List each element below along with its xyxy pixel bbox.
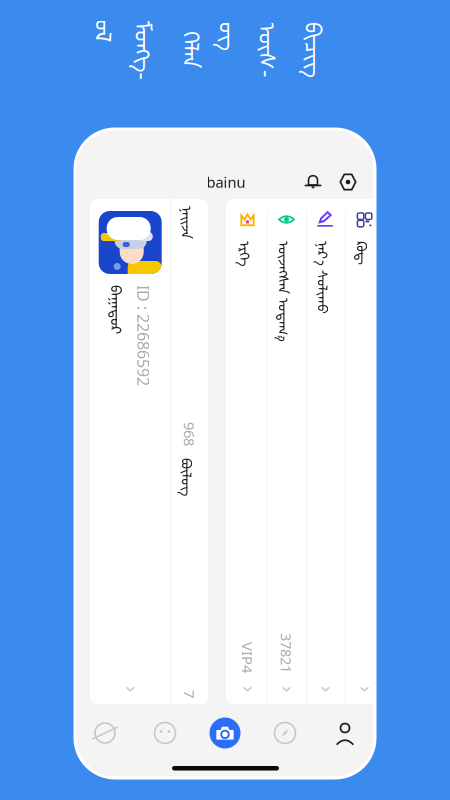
button[interactable]: ᠦᠵᠡᠭᠰᠡᠨ ᠤᠳᠠᠭ᠎ᠠ [0,382,450,421]
button[interactable]: ᠺᠣᠳ᠋ [0,304,450,343]
button[interactable]: Explore [255,707,315,759]
staticText: 968 [207,489,231,509]
staticText: ᠬᠡᠯᠡᠨ [177,30,215,70]
button[interactable]: ID : 22686592 [0,518,450,598]
staticText: ᠦᠰᠦᠭ [225,10,279,90]
button[interactable]: Discover [75,707,135,759]
button[interactable]: Settings [331,165,365,199]
button[interactable]: Camera [195,707,255,759]
staticText: ᠦᠵᠡᠭᠰᠡᠨ ᠤᠳᠠᠭ᠎ᠠ [26,390,127,414]
staticText: ᠨᠡᠷ᠎ᠡ ᠰᠣᠯᠢᠬᠤ [26,351,99,375]
staticText: ID : 22686592 [70,534,171,555]
staticText: ᠮᠣᠩᠭᠣᠯ [98,10,157,90]
button[interactable]: Notifications [296,165,330,199]
button[interactable]: ᠪᠦᠯᠦᠭ [236,480,450,517]
staticText: ᠪᠢᠴᠢᠭ᠌ [290,30,346,70]
staticText: bainu [206,172,245,192]
button[interactable]: ᠨᠡᠷ᠎ᠡ ᠰᠣᠯᠢᠬᠤ [0,343,450,382]
button[interactable]: Profile [315,707,375,759]
button[interactable]: ᠨᠠᠢᠵᠠ [0,480,236,517]
button[interactable]: Moments [135,707,195,759]
staticText: ᠪᠠᠭᠠᠳᠤᠷ [70,557,119,582]
button[interactable]: ᠡᠷᠬᠡ [0,421,450,460]
